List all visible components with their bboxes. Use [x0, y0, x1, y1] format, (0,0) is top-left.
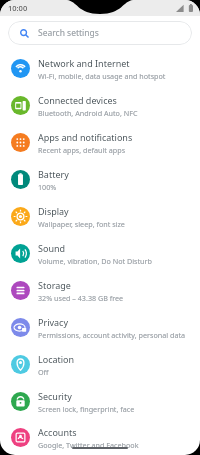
- staticText: Wallpaper, sleep, font size: [38, 219, 125, 229]
- staticText: Screen lock, fingerprint, face: [38, 404, 135, 414]
- button[interactable]: Location: [0, 346, 200, 383]
- staticText: Search settings: [38, 27, 99, 39]
- staticText: Location: [38, 353, 75, 365]
- other: Storage: [11, 281, 30, 300]
- staticText: Sound: [38, 242, 66, 254]
- other: Apps and notifications: [11, 133, 30, 152]
- staticText: Storage: [38, 279, 71, 291]
- button[interactable]: Network and Internet: [0, 50, 200, 87]
- staticText: Bluetooth, Android Auto, NFC: [38, 108, 138, 118]
- other: Accounts: [11, 428, 30, 447]
- button[interactable]: Privacy: [0, 309, 200, 346]
- button[interactable]: Search settings: [8, 21, 192, 45]
- other: Battery: [11, 170, 30, 189]
- button[interactable]: Accounts: [0, 420, 200, 455]
- staticText: Security: [38, 390, 72, 402]
- button[interactable]: Apps and notifications: [0, 124, 200, 161]
- staticText: Recent apps, default apps: [38, 145, 126, 155]
- staticText: Volume, vibration, Do Not Disturb: [38, 256, 152, 266]
- other: Location: [11, 355, 30, 374]
- staticText: 32% used – 43.38 GB free: [38, 293, 124, 303]
- other: Privacy: [11, 318, 30, 337]
- other: Network and Internet: [11, 59, 30, 78]
- button[interactable]: Display: [0, 198, 200, 235]
- staticText: 100%: [38, 182, 57, 192]
- staticText: 10:00: [8, 3, 28, 13]
- staticText: Battery: [38, 168, 69, 180]
- button[interactable]: Battery: [0, 161, 200, 198]
- staticText: Connected devices: [38, 94, 117, 106]
- staticText: Permissions, account activity, personal …: [38, 330, 186, 340]
- other: Security: [11, 392, 30, 411]
- staticText: Google, Twitter and Facebook: [38, 440, 139, 450]
- button[interactable]: Storage: [0, 272, 200, 309]
- staticText: Network and Internet: [38, 57, 130, 69]
- staticText: Off: [38, 367, 49, 377]
- button[interactable]: Connected devices: [0, 87, 200, 124]
- staticText: Wi-Fi, mobile, data usage and hotspot: [38, 71, 166, 81]
- staticText: Accounts: [38, 426, 77, 438]
- staticText: Display: [38, 205, 69, 217]
- button[interactable]: Sound: [0, 235, 200, 272]
- staticText: Apps and notifications: [38, 131, 133, 143]
- other: Display: [11, 207, 30, 226]
- other: Connected devices: [11, 96, 30, 115]
- other: Sound: [11, 244, 30, 263]
- staticText: Privacy: [38, 316, 69, 328]
- button[interactable]: Security: [0, 383, 200, 420]
